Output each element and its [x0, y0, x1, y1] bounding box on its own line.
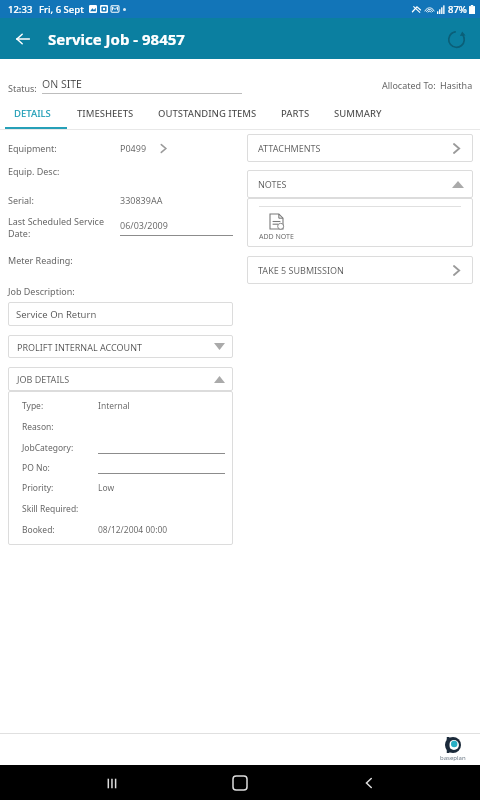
staticText: Low — [98, 482, 115, 494]
button[interactable]: TIMESHEETS — [65, 99, 146, 127]
button[interactable]: Open equipment — [155, 140, 171, 156]
button[interactable]: Service On Return — [8, 302, 233, 326]
staticText: Equipment: — [8, 142, 57, 154]
staticText: Service On Return — [16, 308, 97, 321]
staticText: 06/03/2009 — [120, 219, 168, 231]
staticText: SUMMARY — [334, 107, 382, 120]
button[interactable]: SUMMARY — [322, 99, 394, 127]
staticText: ATTACHMENTS — [258, 142, 321, 154]
button[interactable]: ATTACHMENTS — [247, 134, 473, 162]
staticText: DETAILS — [14, 107, 51, 120]
staticText: PARTS — [281, 107, 310, 120]
button[interactable]: NOTES — [247, 170, 473, 198]
staticText: P0499 — [120, 142, 147, 154]
button[interactable]: OUTSTANDING ITEMS — [146, 99, 269, 127]
staticText: TAKE 5 SUBMISSION — [258, 264, 344, 276]
staticText: Booked: — [22, 524, 55, 536]
staticText: baseplan — [440, 754, 466, 762]
staticText: ON SITE — [42, 77, 82, 91]
staticText: Internal — [98, 400, 130, 412]
staticText: Equip. Desc: — [8, 165, 60, 177]
button[interactable]: Back — [6, 22, 40, 56]
button[interactable]: JOB DETAILS — [8, 367, 233, 391]
button[interactable]: Back — [352, 766, 386, 800]
staticText: JOB DETAILS — [17, 373, 70, 385]
staticText: Serial: — [8, 194, 34, 206]
staticText: Service Job - 98457 — [48, 29, 185, 49]
button[interactable]: TAKE 5 SUBMISSION — [247, 256, 473, 284]
button[interactable]: ADD NOTE — [259, 214, 294, 242]
button[interactable]: Home — [223, 766, 257, 800]
staticText: PO No: — [22, 462, 50, 474]
button[interactable]: Recents — [95, 766, 129, 800]
staticText: Job Description: — [8, 285, 75, 297]
staticText: JobCategory: — [22, 442, 74, 454]
staticText: Hasitha — [440, 79, 473, 91]
staticText: 08/12/2004 00:00 — [98, 524, 168, 536]
staticText: 87% — [448, 3, 467, 16]
button[interactable]: PARTS — [269, 99, 322, 127]
staticText: NOTES — [258, 178, 287, 190]
button[interactable]: PROLIFT INTERNAL ACCOUNT — [8, 335, 233, 358]
staticText: 330839AA — [120, 194, 163, 206]
staticText: Priority: — [22, 482, 54, 494]
staticText: OUTSTANDING ITEMS — [158, 107, 257, 120]
staticText: ADD NOTE — [259, 232, 294, 242]
staticText: Allocated To: — [382, 79, 436, 91]
staticText: Type: — [22, 400, 44, 412]
staticText: Reason: — [22, 421, 54, 433]
staticText: Status: — [8, 82, 37, 94]
button[interactable]: DETAILS — [0, 99, 65, 127]
button[interactable]: ON SITE — [42, 77, 242, 94]
staticText: Meter Reading: — [8, 254, 73, 266]
staticText: PROLIFT INTERNAL ACCOUNT — [17, 341, 143, 353]
staticText: Skill Required: — [22, 503, 79, 515]
staticText: TIMESHEETS — [77, 107, 134, 120]
staticText: 12:33 — [8, 3, 33, 16]
button[interactable]: Refresh — [440, 23, 472, 55]
staticText: Fri, 6 Sept — [39, 3, 84, 16]
staticText: Last Scheduled Service Date: — [8, 215, 120, 239]
